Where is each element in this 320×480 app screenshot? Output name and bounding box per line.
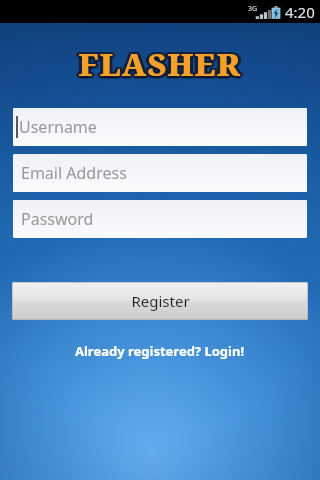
- staticText: Already registered? Login!: [75, 342, 245, 360]
- button[interactable]: Password: [13, 200, 307, 238]
- staticText: 4:20: [285, 2, 315, 22]
- button[interactable]: Username: [13, 108, 307, 146]
- staticText: Email Address: [21, 162, 127, 184]
- button[interactable]: Already registered? Login!: [0, 338, 320, 364]
- staticText: Register: [131, 291, 190, 311]
- button[interactable]: Email Address: [13, 154, 307, 192]
- button[interactable]: Register: [12, 282, 308, 320]
- staticText: Username: [19, 116, 97, 138]
- staticText: Password: [21, 208, 94, 230]
- staticText: 3G: [248, 4, 258, 14]
